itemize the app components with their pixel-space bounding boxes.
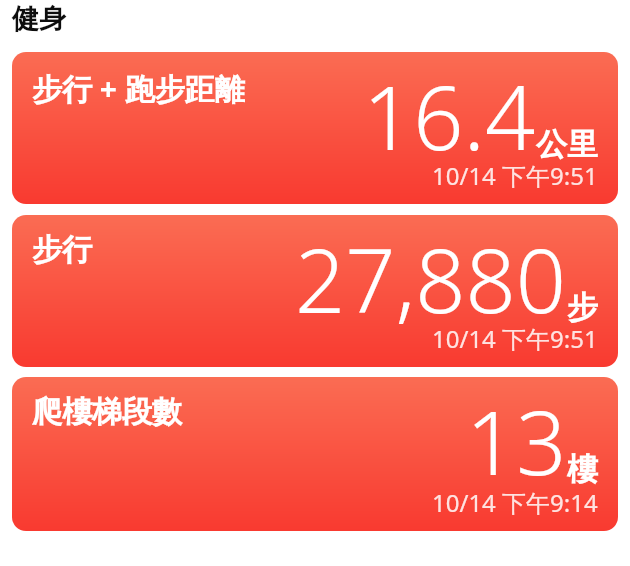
staticText: 健身: [12, 2, 66, 36]
staticText: 27,880: [295, 219, 567, 339]
staticText: 步行 + 跑步距離: [32, 68, 245, 109]
staticText: 13: [466, 381, 567, 501]
staticText: 樓: [567, 450, 598, 489]
button[interactable]: 步行: [12, 215, 618, 367]
staticText: 16.4: [363, 56, 536, 176]
staticText: 爬樓梯段數: [32, 393, 182, 431]
staticText: 步: [567, 288, 598, 327]
staticText: 公里: [536, 125, 598, 164]
button[interactable]: 步行 + 跑步距離: [12, 52, 618, 204]
staticText: 10/14 下午9:51: [432, 159, 598, 192]
button[interactable]: 爬樓梯段數: [12, 377, 618, 531]
staticText: 10/14 下午9:51: [432, 322, 598, 355]
staticText: 步行: [32, 231, 92, 269]
staticText: 10/14 下午9:14: [432, 486, 598, 519]
